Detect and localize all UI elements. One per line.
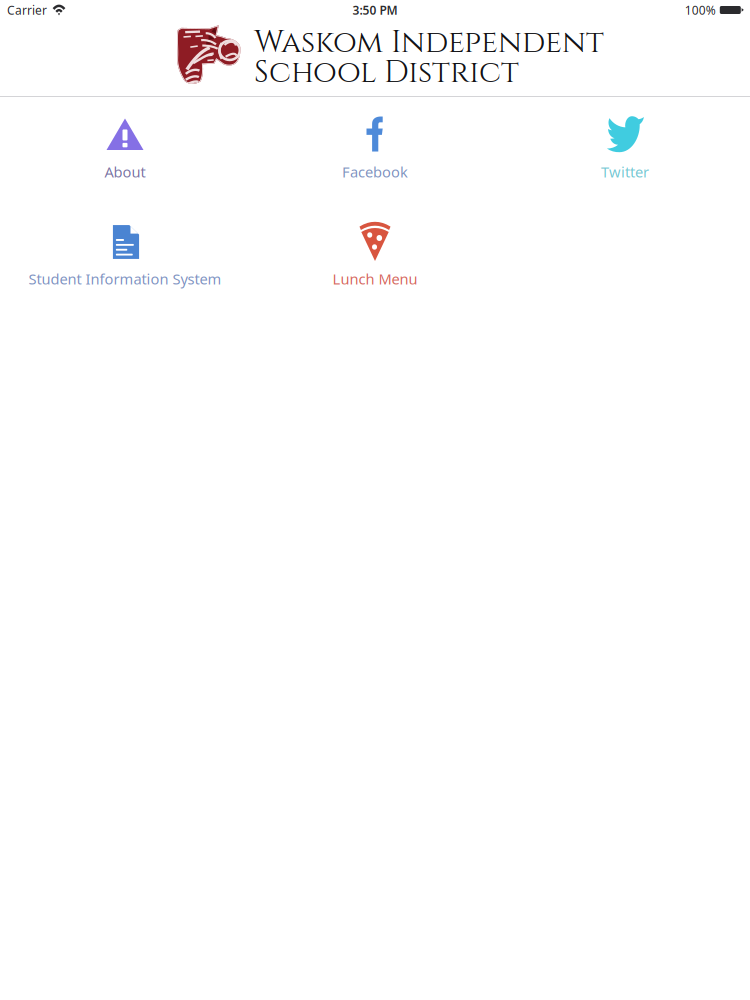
staticText: About	[104, 162, 145, 181]
staticText: 3:50 PM	[352, 2, 397, 18]
staticText: 100%	[685, 2, 716, 18]
button[interactable]: Facebook	[250, 114, 500, 202]
staticText: School District	[254, 52, 519, 93]
staticText: Student Information System	[28, 269, 221, 288]
staticText: Waskom Independent	[254, 22, 604, 63]
staticText: Twitter	[601, 162, 649, 181]
button[interactable]: Student Information System	[0, 221, 250, 309]
button[interactable]: Lunch Menu	[250, 221, 500, 309]
staticText: Facebook	[342, 162, 408, 181]
button[interactable]: About	[0, 114, 250, 202]
button[interactable]: Twitter	[500, 114, 750, 202]
staticText: Carrier	[7, 2, 47, 18]
staticText: Lunch Menu	[332, 269, 417, 288]
